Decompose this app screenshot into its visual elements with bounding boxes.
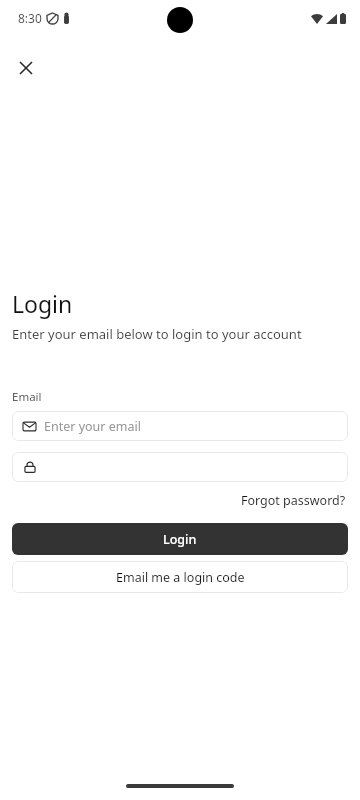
staticText: Email me a login code xyxy=(116,569,245,586)
button[interactable] xyxy=(12,452,348,482)
button[interactable]: Forgot password? xyxy=(239,490,348,511)
staticText: Enter your email xyxy=(44,418,141,435)
button[interactable]: Login xyxy=(12,523,348,555)
staticText: Login xyxy=(163,531,197,548)
staticText: 8:30 xyxy=(18,10,42,26)
staticText: Forgot password? xyxy=(241,492,346,509)
button[interactable]: Close xyxy=(8,50,44,86)
staticText: Email xyxy=(12,389,42,405)
staticText: Enter your email below to login to your … xyxy=(12,325,302,343)
staticText: Login xyxy=(12,288,73,319)
button[interactable]: Enter your email xyxy=(12,411,348,441)
button[interactable]: Email me a login code xyxy=(12,561,348,593)
